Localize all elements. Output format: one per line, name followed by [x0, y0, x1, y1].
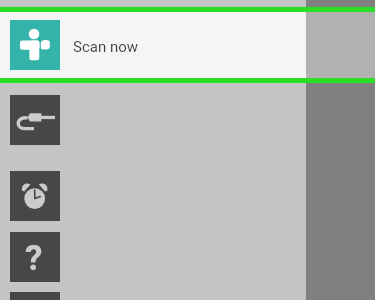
button[interactable]: Connect — [10, 95, 60, 145]
button[interactable]: Alarm — [10, 171, 60, 221]
button[interactable]: Help — [10, 232, 60, 282]
staticText: ? — [25, 238, 43, 279]
staticText: Scan now — [73, 38, 139, 56]
button[interactable]: Scan now — [0, 12, 306, 78]
